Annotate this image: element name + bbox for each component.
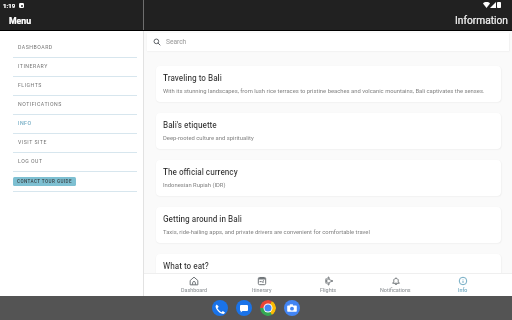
button[interactable]: Phone: [212, 300, 228, 316]
button[interactable]: What to eat?: [156, 254, 501, 290]
staticText: The official currency: [163, 167, 238, 177]
staticText: VISIT SITE: [18, 139, 47, 145]
staticText: LOG OUT: [18, 158, 43, 164]
button[interactable]: Getting around in Bali: [156, 207, 501, 243]
staticText: Itinerary: [252, 287, 272, 293]
button[interactable]: FLIGHTS: [0, 77, 143, 96]
button[interactable]: VISIT SITE: [0, 134, 143, 153]
staticText: 1:19: [3, 2, 16, 9]
button[interactable]: Camera: [284, 300, 300, 316]
staticText: Deep-rooted culture and spirituality: [163, 135, 254, 142]
staticText: Notifications: [380, 287, 411, 293]
staticText: Dashboard: [181, 287, 208, 293]
button[interactable]: LOG OUT: [0, 153, 143, 172]
staticText: DASHBOARD: [18, 44, 53, 50]
staticText: Info: [458, 287, 468, 293]
button[interactable]: Traveling to Bali: [156, 66, 501, 102]
button[interactable]: Info: [429, 273, 496, 296]
staticText: With its stunning landscapes, from lush …: [163, 88, 485, 95]
staticText: FLIGHTS: [18, 82, 42, 88]
button[interactable]: ITINERARY: [0, 58, 143, 77]
button[interactable]: CONTACT TOUR GUIDE: [13, 177, 76, 186]
staticText: ITINERARY: [18, 63, 48, 69]
button[interactable]: Search: [147, 33, 509, 51]
button[interactable]: Messages: [236, 300, 252, 316]
button[interactable]: DASHBOARD: [0, 39, 143, 58]
button[interactable]: The official currency: [156, 160, 501, 196]
button[interactable]: Chrome: [260, 300, 276, 316]
staticText: Taxis, ride-hailing apps, and private dr…: [163, 229, 370, 236]
staticText: What to eat?: [163, 261, 209, 271]
button[interactable]: Dashboard: [160, 273, 228, 296]
button[interactable]: INFO: [0, 115, 143, 134]
staticText: NOTIFICATIONS: [18, 101, 62, 107]
staticText: CONTACT TOUR GUIDE: [17, 179, 72, 184]
staticText: Indonesian Rupiah (IDR): [163, 182, 226, 189]
staticText: Information: [455, 15, 508, 27]
button[interactable]: Bali's etiquette: [156, 113, 501, 149]
staticText: Menu: [9, 16, 32, 26]
staticText: INFO: [18, 120, 32, 126]
staticText: Traveling to Bali: [163, 73, 222, 83]
staticText: Search: [166, 38, 187, 46]
button[interactable]: Flights: [295, 273, 362, 296]
button[interactable]: Itinerary: [228, 273, 295, 296]
staticText: Getting around in Bali: [163, 214, 242, 224]
staticText: Bali's etiquette: [163, 120, 217, 130]
button[interactable]: Notifications: [362, 273, 429, 296]
button[interactable]: NOTIFICATIONS: [0, 96, 143, 115]
staticText: Flights: [320, 287, 337, 293]
